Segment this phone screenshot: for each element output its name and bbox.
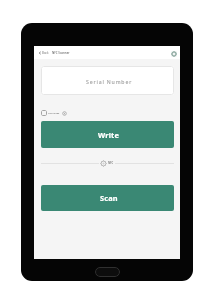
button[interactable]: Settings [169,49,178,58]
button[interactable]: Write [41,121,174,148]
staticText: Serial Number [86,78,133,85]
staticText: Back [42,51,49,55]
staticText: NFC [108,161,114,165]
staticText: NFC Scanner [52,51,70,55]
button[interactable]: Scan [41,185,174,211]
staticText: Write [98,130,119,140]
button[interactable]: Serial Number [41,66,174,95]
button[interactable]: Home [95,267,120,277]
button[interactable]: Lock Mode [41,109,67,117]
staticText: Lock Mode [48,112,60,115]
button[interactable]: Back [38,51,49,55]
staticText: Scan [100,193,118,203]
